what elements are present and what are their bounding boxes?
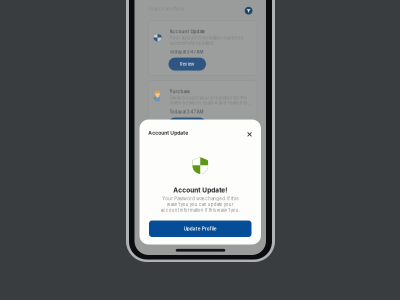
staticText: Account Update: [169, 29, 205, 34]
button[interactable]: Review: [168, 58, 206, 71]
staticText: Review: [180, 61, 195, 67]
staticText: match between Team A and Team B to...: [169, 100, 250, 106]
staticText: Today at 3:47 AM: [169, 49, 203, 54]
staticText: Your Password was changed. If this: [162, 196, 238, 201]
staticText: Search anything: [149, 6, 185, 11]
button[interactable]: Filter: [245, 7, 252, 15]
staticText: account information if this wasn't you.: [161, 207, 240, 213]
staticText: Your account information has been: [169, 35, 243, 40]
staticText: successfully updated.: [169, 40, 214, 46]
staticText: Account Update!: [173, 186, 227, 194]
button[interactable]: Update Profile: [149, 220, 251, 237]
staticText: wasn't you you can update your: [167, 202, 234, 207]
staticText: Purchase: [169, 89, 190, 94]
staticText: Today at 3:47 AM: [169, 109, 203, 114]
button[interactable]: Review: [168, 117, 206, 130]
staticText: Account Update: [148, 130, 188, 136]
button[interactable]: Close: [245, 130, 254, 139]
staticText: Update Profile: [184, 226, 217, 232]
staticText: Owais bought your prediction for the: [169, 95, 247, 100]
